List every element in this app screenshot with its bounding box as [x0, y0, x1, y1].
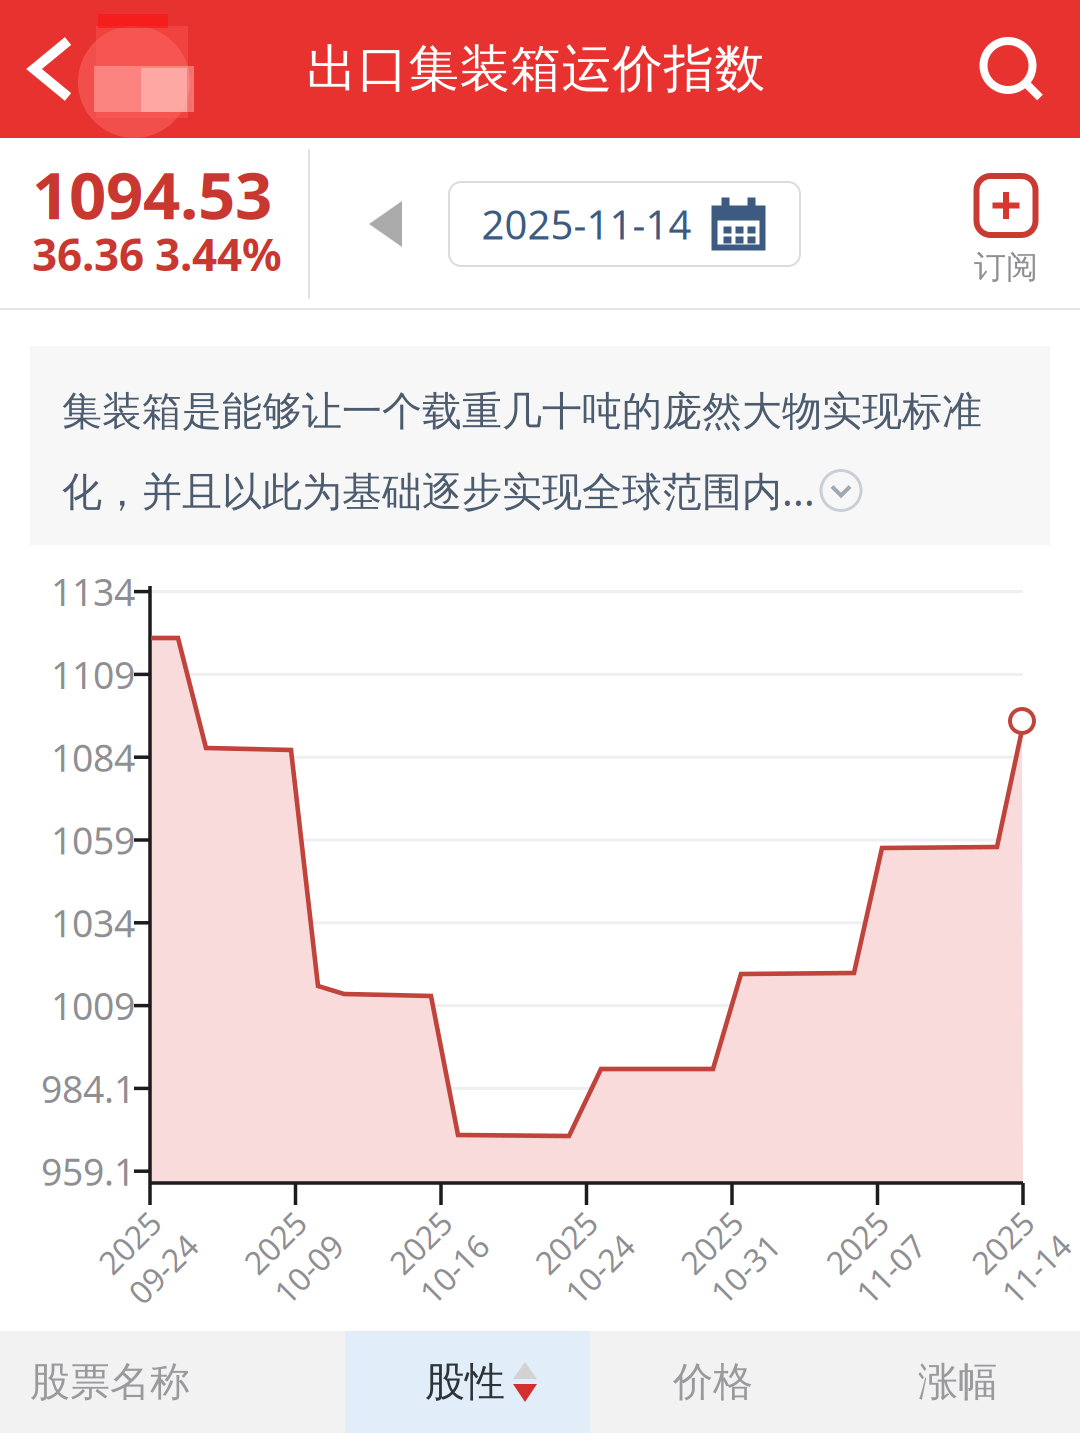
staticText: 1059 [51, 815, 135, 865]
staticText: 2025 [252, 1211, 324, 1254]
staticText: 1094.53 [32, 151, 272, 237]
button[interactable]: 展开 [819, 468, 863, 512]
button[interactable]: 股性 [345, 1331, 590, 1433]
staticText: 1034 [51, 898, 135, 948]
staticText: 1134 [51, 567, 135, 616]
button[interactable]: 订阅 [953, 138, 1080, 310]
staticText: 涨幅 [918, 1357, 998, 1406]
staticText: 股性 [425, 1357, 505, 1406]
staticText: 订阅 [974, 247, 1038, 287]
staticText: 2025-11-14 [481, 197, 691, 250]
staticText: 11-07 [834, 1254, 916, 1296]
staticText: 984.1 [41, 1064, 135, 1113]
staticText: 1109 [51, 650, 135, 699]
staticText: 股票名称 [30, 1357, 190, 1406]
button[interactable]: 涨幅 [836, 1331, 1080, 1433]
staticText: 959.1 [41, 1146, 135, 1196]
staticText: 集装箱是能够让一个载重几十吨的庞然大物实现标准 [62, 387, 982, 436]
button[interactable]: 股票名称 [0, 1331, 345, 1433]
staticText: 11-14 [980, 1254, 1062, 1296]
staticText: 10-16 [398, 1254, 480, 1296]
staticText: 出口集装箱运价指数 [306, 38, 765, 100]
staticText: 36.36 3.44% [32, 225, 282, 283]
button[interactable]: 返回 [0, 0, 129, 138]
staticText: 2025 [543, 1211, 615, 1254]
staticText: 10-09 [252, 1254, 334, 1296]
staticText: 10-31 [689, 1254, 771, 1296]
staticText: 2025 [834, 1211, 906, 1254]
button[interactable]: 前一日 [368, 198, 404, 250]
button[interactable]: 价格 [590, 1331, 836, 1433]
staticText: 1009 [51, 981, 135, 1030]
staticText: 1084 [51, 732, 135, 782]
staticText: 2025 [980, 1211, 1052, 1254]
staticText: 10-24 [543, 1254, 625, 1296]
staticText: 2025 [689, 1211, 761, 1254]
button[interactable]: 2025-11-14 [449, 182, 800, 266]
staticText: 价格 [673, 1357, 753, 1406]
button[interactable]: 搜索 [943, 0, 1080, 138]
staticText: 2025 [107, 1211, 179, 1254]
staticText: 化，并且以此为基础逐步实现全球范围内... [62, 464, 815, 517]
staticText: 2025 [398, 1211, 470, 1254]
staticText: 09-24 [107, 1254, 189, 1296]
